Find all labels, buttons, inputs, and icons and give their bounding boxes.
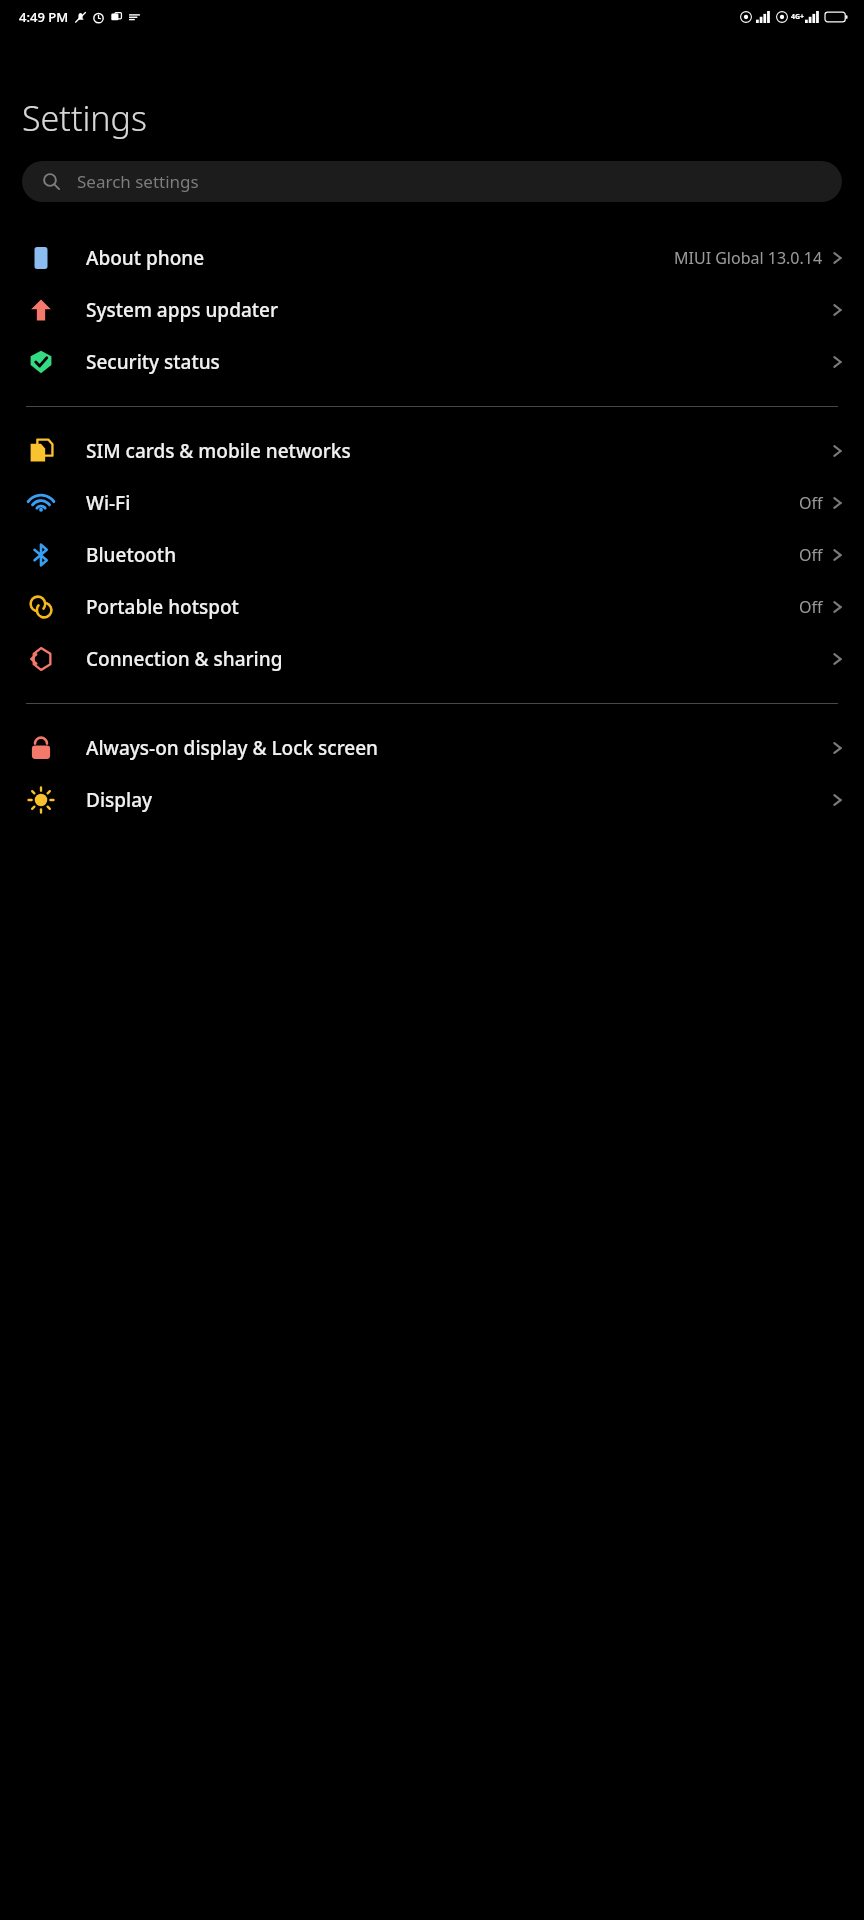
staticText: About phone — [86, 245, 666, 271]
staticText: Display — [86, 787, 823, 813]
staticText: MIUI Global 13.0.14 — [674, 247, 823, 269]
staticText: SIM cards & mobile networks — [86, 438, 823, 464]
button[interactable]: Security status — [0, 336, 864, 388]
staticText: 4:49 PM — [19, 8, 69, 26]
button[interactable]: Always-on display & Lock screen — [0, 722, 864, 774]
staticText: Search settings — [77, 170, 199, 193]
staticText: Security status — [86, 349, 823, 375]
staticText: Off — [799, 596, 823, 618]
staticText: Settings — [22, 95, 147, 141]
staticText: Always-on display & Lock screen — [86, 735, 823, 761]
button[interactable]: Search settings — [22, 161, 842, 202]
staticText: Connection & sharing — [86, 646, 823, 672]
button[interactable]: Connection & sharing — [0, 633, 864, 685]
button[interactable]: System apps updater — [0, 284, 864, 336]
button[interactable]: Portable hotspot — [0, 581, 864, 633]
staticText: Portable hotspot — [86, 594, 791, 620]
button[interactable]: SIM cards & mobile networks — [0, 425, 864, 477]
staticText: System apps updater — [86, 297, 823, 323]
staticText: Off — [799, 544, 823, 566]
button[interactable]: Display — [0, 774, 864, 826]
staticText: Bluetooth — [86, 542, 791, 568]
button[interactable]: Wi-Fi — [0, 477, 864, 529]
button[interactable]: About phone — [0, 232, 864, 284]
staticText: Off — [799, 492, 823, 514]
staticText: 4G+ — [791, 12, 805, 22]
button[interactable]: Bluetooth — [0, 529, 864, 581]
staticText: Wi-Fi — [86, 490, 791, 516]
